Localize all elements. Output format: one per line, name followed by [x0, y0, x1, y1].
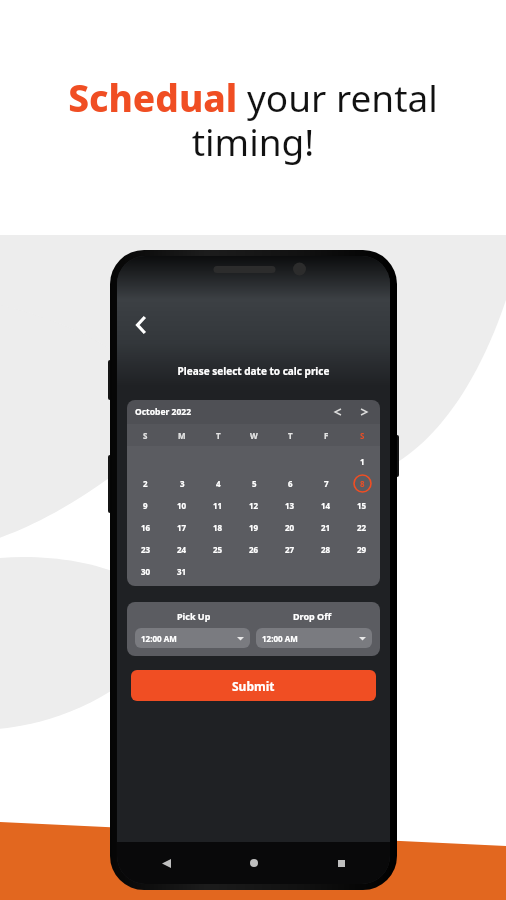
- staticText: Submit: [232, 678, 275, 694]
- button[interactable]: 13: [272, 494, 308, 516]
- button[interactable]: Recents: [328, 850, 354, 876]
- button[interactable]: 12: [236, 494, 272, 516]
- button[interactable]: 31: [164, 560, 200, 582]
- staticText: 21: [321, 522, 331, 533]
- button[interactable]: Next month: [356, 404, 372, 420]
- staticText: 10: [177, 500, 187, 511]
- staticText: 1: [360, 456, 365, 467]
- staticText: S: [143, 430, 148, 441]
- button[interactable]: 2: [127, 472, 164, 494]
- staticText: 20: [285, 522, 295, 533]
- staticText: 7: [324, 478, 329, 489]
- button[interactable]: 29: [344, 538, 380, 560]
- staticText: F: [324, 430, 329, 441]
- staticText: 16: [141, 522, 151, 533]
- staticText: W: [250, 430, 258, 441]
- button[interactable]: 5: [236, 472, 272, 494]
- staticText: 14: [321, 500, 331, 511]
- button[interactable]: Home: [241, 850, 267, 876]
- button[interactable]: Back: [125, 308, 159, 342]
- staticText: 5: [252, 478, 257, 489]
- staticText: 15: [357, 500, 367, 511]
- button[interactable]: 25: [200, 538, 236, 560]
- button[interactable]: 23: [127, 538, 164, 560]
- button[interactable]: 15: [344, 494, 380, 516]
- button[interactable]: 30: [127, 560, 164, 582]
- staticText: 19: [249, 522, 259, 533]
- button[interactable]: 3: [164, 472, 200, 494]
- button[interactable]: 4: [200, 472, 236, 494]
- button[interactable]: 12:00 AM: [135, 628, 250, 648]
- staticText: 27: [285, 544, 295, 555]
- button[interactable]: 9: [127, 494, 164, 516]
- button[interactable]: 12:00 AM: [256, 628, 372, 648]
- staticText: 2: [143, 478, 148, 489]
- button[interactable]: 24: [164, 538, 200, 560]
- button[interactable]: 10: [164, 494, 200, 516]
- button[interactable]: 26: [236, 538, 272, 560]
- staticText: Pick Up: [177, 610, 211, 622]
- staticText: 3: [180, 478, 185, 489]
- staticText: 22: [357, 522, 367, 533]
- button[interactable]: 7: [308, 472, 344, 494]
- button[interactable]: 14: [308, 494, 344, 516]
- button[interactable]: 16: [127, 516, 164, 538]
- staticText: 8: [360, 478, 365, 489]
- staticText: 9: [143, 500, 148, 511]
- staticText: 12:00 AM: [262, 633, 298, 644]
- staticText: 30: [141, 566, 151, 577]
- button[interactable]: 6: [272, 472, 308, 494]
- staticText: 29: [357, 544, 367, 555]
- staticText: 4: [216, 478, 221, 489]
- button[interactable]: 20: [272, 516, 308, 538]
- staticText: T: [288, 430, 293, 441]
- button[interactable]: 11: [200, 494, 236, 516]
- button[interactable]: Submit: [131, 670, 376, 701]
- staticText: 6: [288, 478, 293, 489]
- button[interactable]: 28: [308, 538, 344, 560]
- staticText: 12:00 AM: [141, 633, 177, 644]
- button[interactable]: Back: [153, 850, 179, 876]
- staticText: 23: [141, 544, 151, 555]
- button[interactable]: 19: [236, 516, 272, 538]
- button[interactable]: 1: [344, 450, 380, 472]
- staticText: T: [216, 430, 221, 441]
- staticText: 11: [213, 500, 223, 511]
- staticText: 13: [285, 500, 295, 511]
- staticText: 24: [177, 544, 187, 555]
- staticText: 26: [249, 544, 259, 555]
- button[interactable]: 17: [164, 516, 200, 538]
- staticText: S: [360, 430, 365, 441]
- button[interactable]: 8: [353, 474, 372, 493]
- staticText: M: [178, 430, 186, 441]
- staticText: 28: [321, 544, 331, 555]
- staticText: Drop Off: [293, 610, 332, 622]
- button[interactable]: 21: [308, 516, 344, 538]
- button[interactable]: 18: [200, 516, 236, 538]
- staticText: 18: [213, 522, 223, 533]
- staticText: 25: [213, 544, 223, 555]
- button[interactable]: Previous month: [330, 404, 346, 420]
- staticText: Please select date to calc price: [117, 364, 390, 378]
- staticText: 31: [177, 566, 187, 577]
- button[interactable]: 27: [272, 538, 308, 560]
- button[interactable]: 22: [344, 516, 380, 538]
- staticText: Schedual your rental timing!: [26, 72, 480, 167]
- staticText: October 2022: [135, 406, 192, 418]
- staticText: 17: [177, 522, 187, 533]
- staticText: 12: [249, 500, 259, 511]
